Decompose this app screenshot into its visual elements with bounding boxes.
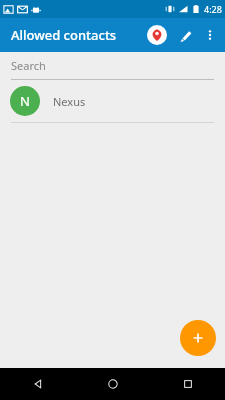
button[interactable]: Home	[75, 368, 150, 400]
staticText: N	[20, 92, 30, 110]
staticText: Search	[11, 58, 46, 73]
button[interactable]: Edit	[172, 22, 198, 48]
staticText: Nexus	[53, 94, 86, 109]
button[interactable]: More options	[199, 24, 221, 46]
staticText: Allowed contacts	[11, 26, 117, 44]
button[interactable]: Back	[0, 368, 75, 400]
button[interactable]: N	[0, 80, 225, 122]
button[interactable]: Search	[0, 52, 225, 80]
button[interactable]: Location	[144, 22, 170, 48]
button[interactable]: Add contact	[180, 320, 216, 356]
staticText: 4:28	[204, 3, 222, 15]
button[interactable]: Recent apps	[150, 368, 225, 400]
